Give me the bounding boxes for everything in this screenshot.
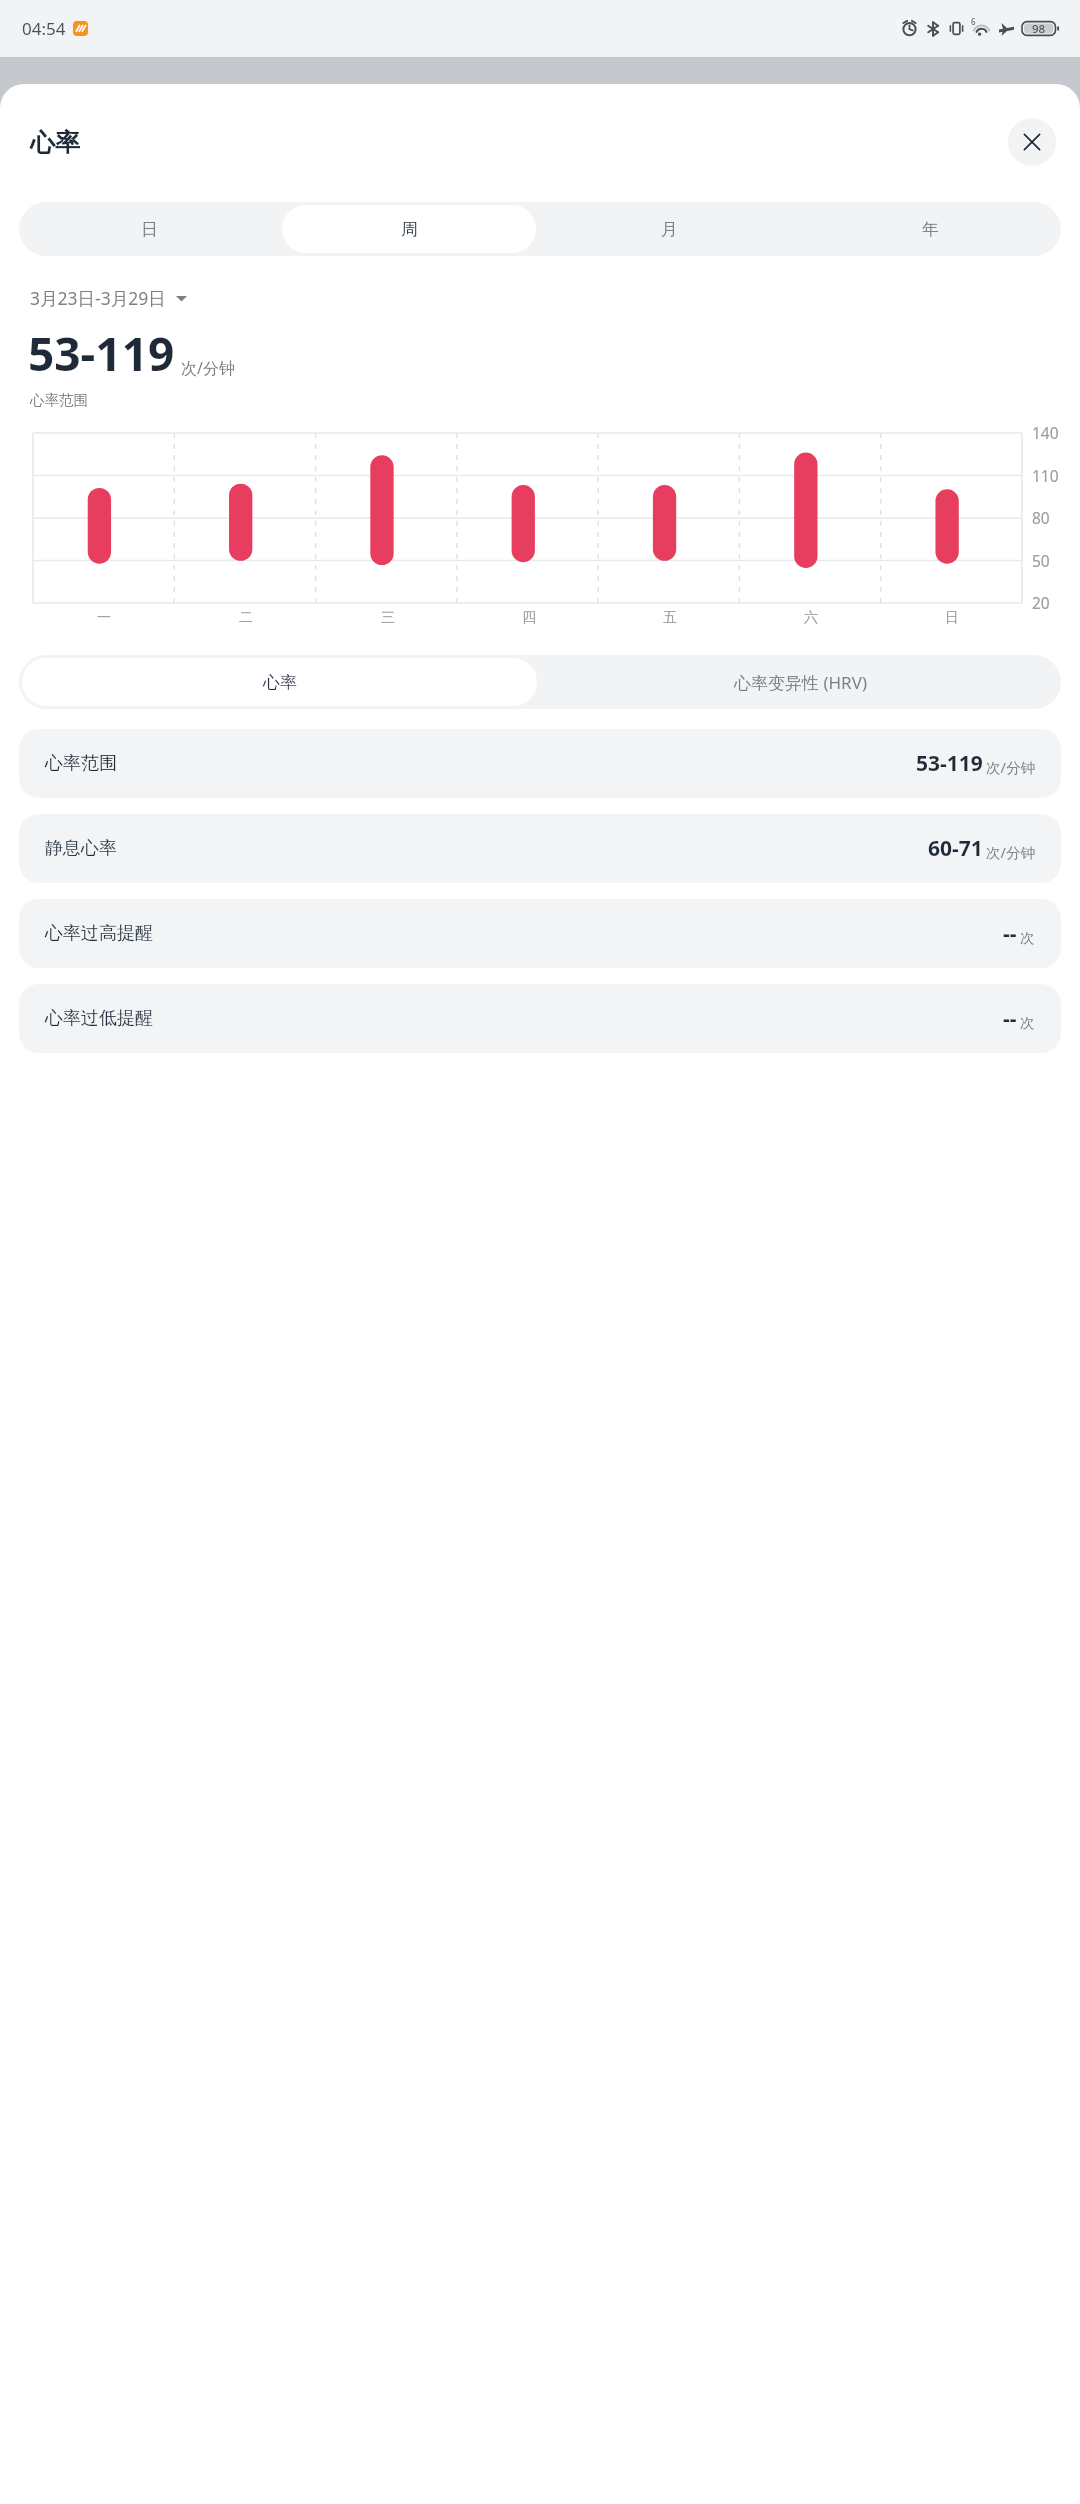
button[interactable]: 心率过低提醒 — [19, 984, 1061, 1053]
staticText: 心率过低提醒 — [45, 1007, 153, 1030]
button[interactable]: 心率过高提醒 — [19, 899, 1061, 968]
staticText: 次/分钟 — [986, 757, 1035, 777]
staticText: 110 — [1032, 465, 1059, 486]
staticText: 年 — [922, 219, 939, 240]
staticText: 日 — [945, 609, 959, 627]
staticText: 04:54 — [22, 17, 66, 40]
staticText: -- — [1003, 1004, 1017, 1033]
staticText: -- — [1003, 919, 1017, 948]
staticText: 月 — [661, 219, 678, 240]
button[interactable]: 心率范围 — [19, 729, 1061, 798]
button[interactable]: 年 — [803, 205, 1058, 253]
staticText: 周 — [401, 219, 418, 240]
staticText: 50 — [1032, 550, 1050, 571]
staticText: 心率 — [30, 127, 80, 158]
staticText: 四 — [522, 609, 536, 627]
staticText: 140 — [1032, 422, 1059, 443]
staticText: 60-71 — [928, 834, 983, 863]
staticText: 心率范围 — [30, 391, 88, 409]
button[interactable]: 月 — [542, 205, 797, 253]
button[interactable]: 关闭 — [1008, 118, 1056, 166]
staticText: 静息心率 — [45, 837, 117, 860]
staticText: 次/分钟 — [181, 357, 235, 379]
staticText: 6 — [971, 16, 976, 27]
button[interactable]: 心率 — [22, 658, 537, 706]
staticText: 次 — [1020, 1014, 1035, 1032]
staticText: 三 — [381, 609, 395, 627]
staticText: 次 — [1020, 929, 1035, 947]
staticText: 次/分钟 — [986, 842, 1035, 862]
staticText: 一 — [97, 609, 111, 627]
staticText: 心率过高提醒 — [45, 922, 153, 945]
staticText: 五 — [663, 609, 677, 627]
staticText: 日 — [141, 219, 158, 240]
staticText: 六 — [804, 609, 818, 627]
staticText: 二 — [239, 609, 253, 627]
staticText: 心率 — [263, 672, 297, 693]
staticText: 53-119 — [28, 322, 175, 385]
staticText: 20 — [1032, 592, 1050, 613]
button[interactable]: 静息心率 — [19, 814, 1061, 883]
button[interactable]: 3月23日-3月29日 — [30, 286, 187, 310]
staticText: 53-119 — [916, 749, 983, 778]
button[interactable]: 日 — [22, 205, 276, 253]
button[interactable]: 心率变异性 (HRV) — [540, 655, 1061, 709]
staticText: 心率范围 — [45, 752, 117, 775]
button[interactable]: 周 — [282, 205, 536, 253]
staticText: 心率变异性 (HRV) — [734, 671, 867, 694]
staticText: 98 — [1032, 21, 1046, 37]
staticText: 80 — [1032, 507, 1050, 528]
staticText: 3月23日-3月29日 — [30, 286, 166, 310]
